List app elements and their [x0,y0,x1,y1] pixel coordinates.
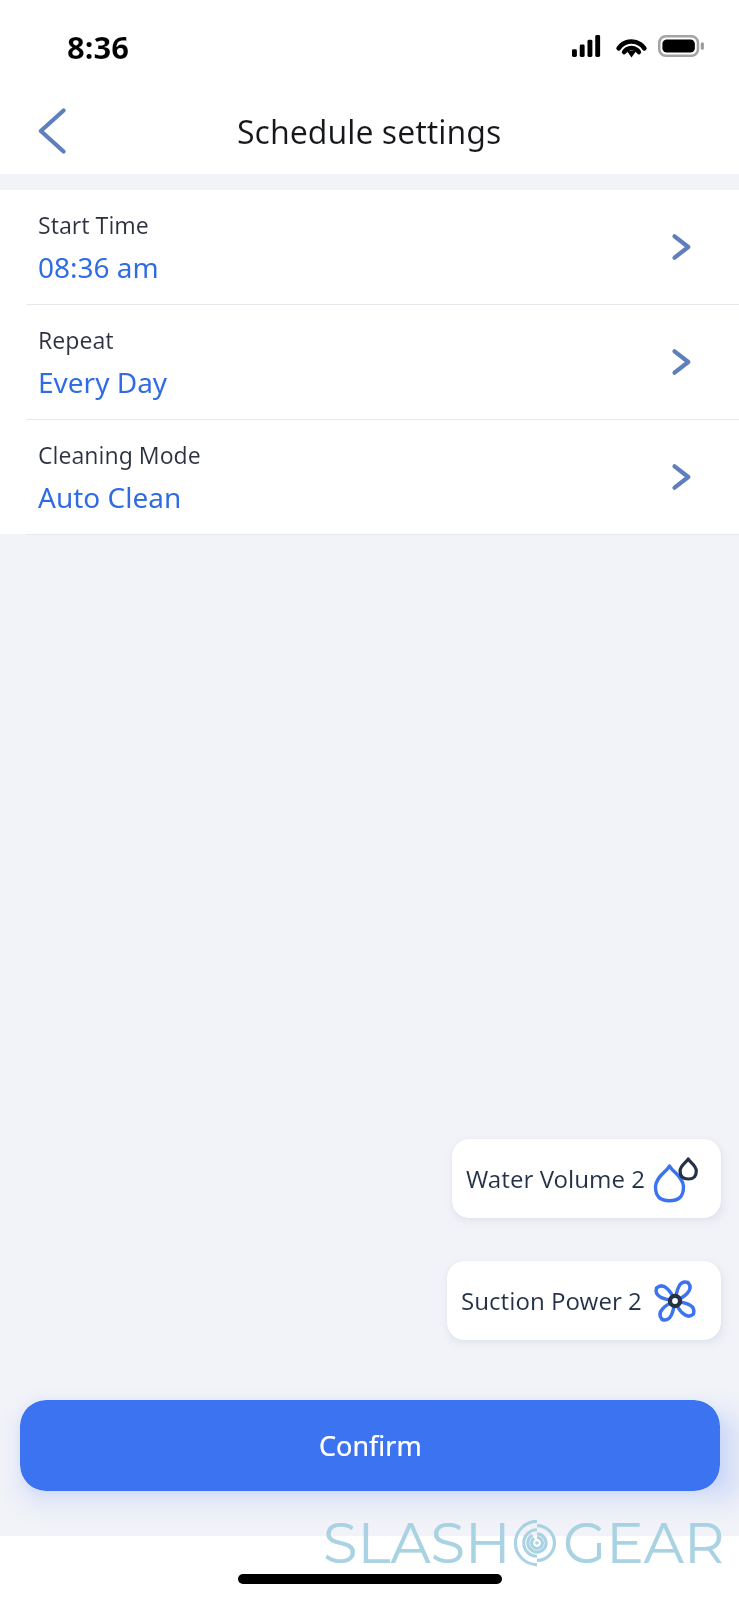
staticText: 08:36 am [38,248,159,286]
staticText: Every Day [38,363,168,401]
button[interactable]: Water Volume 2 [452,1139,721,1218]
button[interactable]: Cleaning Mode [0,420,739,534]
button[interactable]: Suction Power 2 [447,1261,721,1340]
staticText: 8:36 [67,26,129,68]
staticText: Suction Power 2 [461,1284,642,1317]
staticText: Auto Clean [38,478,182,516]
button[interactable]: Repeat [0,305,739,419]
staticText: SLASH [323,1509,511,1577]
button[interactable]: Confirm [20,1400,720,1491]
staticText: Repeat [38,324,114,355]
staticText: GEAR [563,1509,725,1577]
staticText: Confirm [319,1427,422,1464]
button[interactable]: Start Time [0,190,739,304]
staticText: Schedule settings [237,110,502,154]
staticText: Start Time [38,209,149,240]
button[interactable]: Back [18,96,88,166]
staticText: Cleaning Mode [38,439,201,470]
staticText: Water Volume 2 [466,1162,646,1195]
